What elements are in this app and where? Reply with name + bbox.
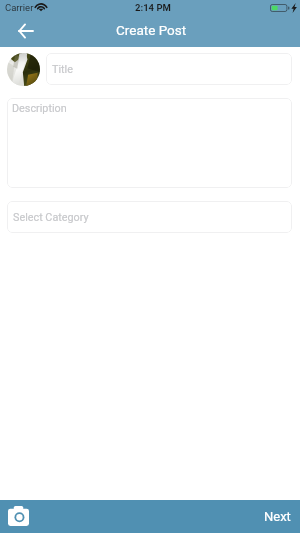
button[interactable]: Camera bbox=[8, 506, 29, 526]
staticText: Select Category bbox=[13, 211, 89, 224]
button[interactable]: Description bbox=[7, 98, 292, 188]
button[interactable]: Select Category bbox=[7, 201, 292, 233]
staticText: Next bbox=[264, 509, 291, 524]
button[interactable]: Next bbox=[252, 503, 300, 530]
button[interactable]: Back bbox=[12, 18, 38, 44]
button[interactable]: Profile photo bbox=[7, 53, 40, 86]
staticText: Create Post bbox=[116, 22, 187, 38]
staticText: Carrier bbox=[5, 2, 34, 13]
staticText: 2:14 PM bbox=[135, 2, 171, 13]
staticText: Description bbox=[12, 102, 67, 115]
button[interactable]: Title bbox=[46, 53, 292, 85]
staticText: Title bbox=[52, 63, 73, 76]
